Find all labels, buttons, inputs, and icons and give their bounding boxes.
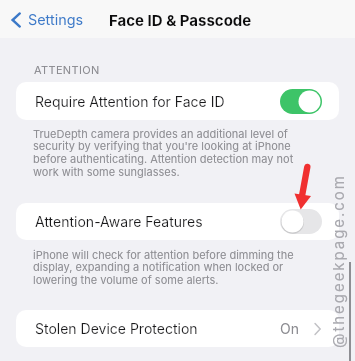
staticText: Settings	[28, 11, 84, 28]
staticText: @thegeekpage.com	[329, 174, 347, 348]
button[interactable]: On	[280, 89, 322, 114]
button[interactable]: Require Attention for Face ID	[16, 82, 339, 120]
button[interactable]: Stolen Device Protection	[16, 310, 339, 347]
staticText: Face ID & Passcode	[109, 11, 252, 29]
staticText: ATTENTION	[34, 63, 100, 76]
staticText: On	[280, 320, 299, 337]
staticText: iPhone will check for attention before d…	[33, 248, 301, 287]
staticText: Attention-Aware Features	[35, 213, 203, 230]
button[interactable]: Settings	[0, 4, 92, 35]
staticText: Require Attention for Face ID	[35, 93, 225, 110]
staticText: TrueDepth camera provides an additional …	[33, 127, 301, 179]
staticText: Stolen Device Protection	[35, 320, 198, 337]
button[interactable]: Off	[280, 209, 322, 234]
button[interactable]: Attention-Aware Features	[16, 203, 339, 240]
